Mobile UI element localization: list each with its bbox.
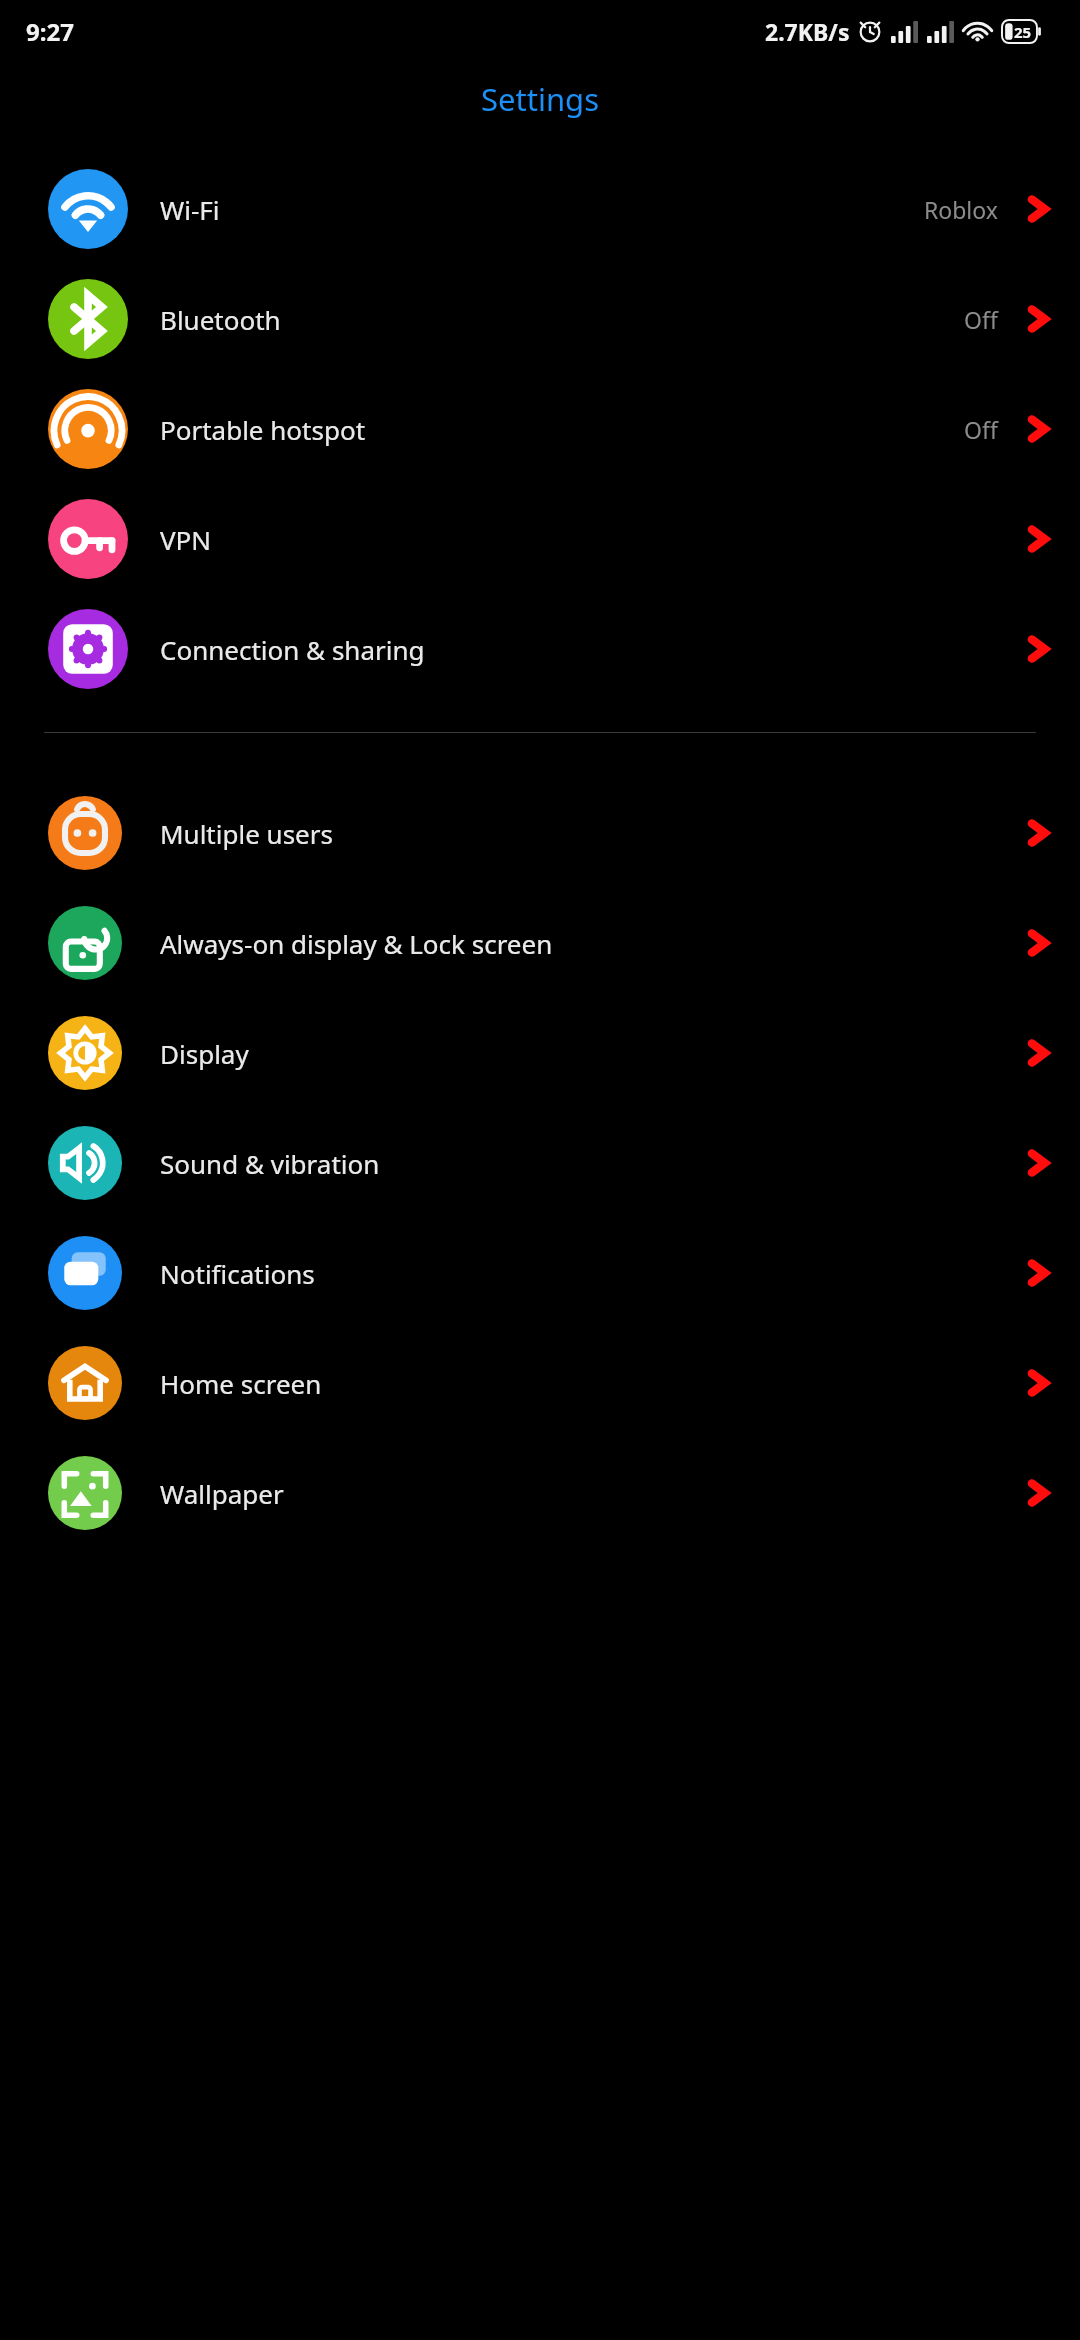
button[interactable]: Multiple users [0,778,1080,888]
staticText: Roblox [924,194,998,225]
button[interactable]: Portable hotspot [0,374,1080,484]
button[interactable]: Bluetooth [0,264,1080,374]
staticText: Wallpaper [160,1476,1024,1511]
staticText: 25 [1014,22,1032,42]
staticText: Notifications [160,1256,1024,1291]
button[interactable]: Always-on display & Lock screen [0,888,1080,998]
button[interactable]: VPN [0,484,1080,594]
button[interactable]: Display [0,998,1080,1108]
staticText: Wi-Fi [160,192,924,227]
button[interactable]: Sound & vibration [0,1108,1080,1218]
staticText: Sound & vibration [160,1146,1024,1181]
staticText: Always-on display & Lock screen [160,926,1024,961]
staticText: 9:27 [26,15,74,48]
staticText: Off [964,304,998,335]
button[interactable]: Wallpaper [0,1438,1080,1548]
staticText: Display [160,1036,1024,1071]
staticText: Settings [481,78,599,120]
button[interactable]: Home screen [0,1328,1080,1438]
staticText: Connection & sharing [160,632,1024,667]
staticText: 2.7KB/s [765,16,850,47]
staticText: Portable hotspot [160,412,964,447]
staticText: VPN [160,522,1024,557]
staticText: Bluetooth [160,302,964,337]
button[interactable]: Wi-Fi [0,154,1080,264]
staticText: Off [964,414,998,445]
button[interactable]: Notifications [0,1218,1080,1328]
button[interactable]: Connection & sharing [0,594,1080,704]
staticText: Multiple users [160,816,1024,851]
staticText: Home screen [160,1366,1024,1401]
